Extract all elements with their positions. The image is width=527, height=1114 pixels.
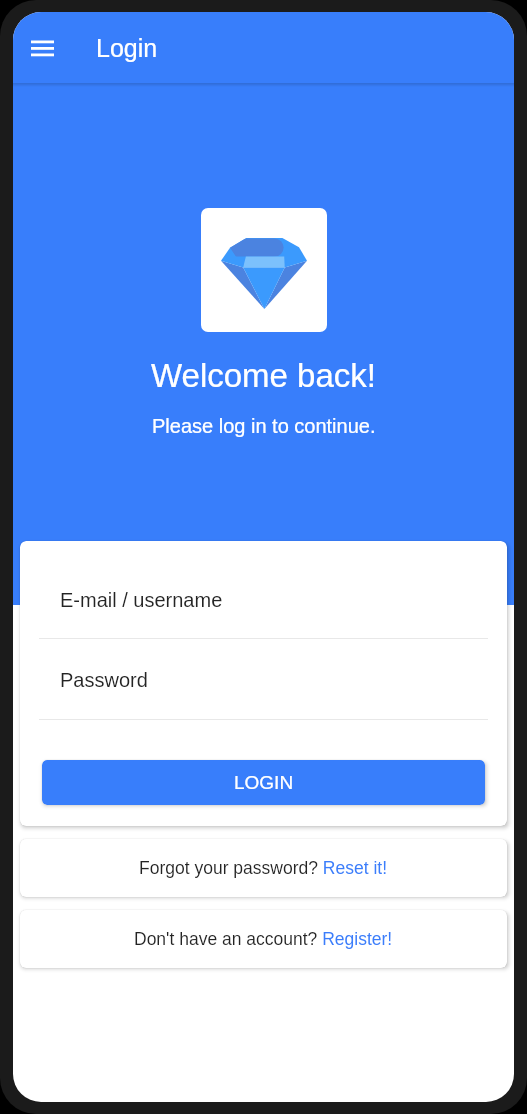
staticText: Don't have an account? Register! xyxy=(134,929,393,949)
staticText: Password xyxy=(60,669,148,691)
button[interactable]: Open navigation menu xyxy=(18,24,66,72)
button[interactable]: Forgot your password? Reset it! xyxy=(20,839,507,897)
button[interactable]: Don't have an account? Register! xyxy=(20,910,507,968)
staticText: Login xyxy=(96,34,158,62)
staticText: E-mail / username xyxy=(60,589,223,611)
staticText: Forgot your password? Reset it! xyxy=(139,858,388,878)
staticText: Welcome back! xyxy=(151,357,376,394)
button[interactable]: LOGIN xyxy=(42,760,485,805)
staticText: Please log in to continue. xyxy=(152,415,376,437)
staticText: LOGIN xyxy=(234,772,294,793)
